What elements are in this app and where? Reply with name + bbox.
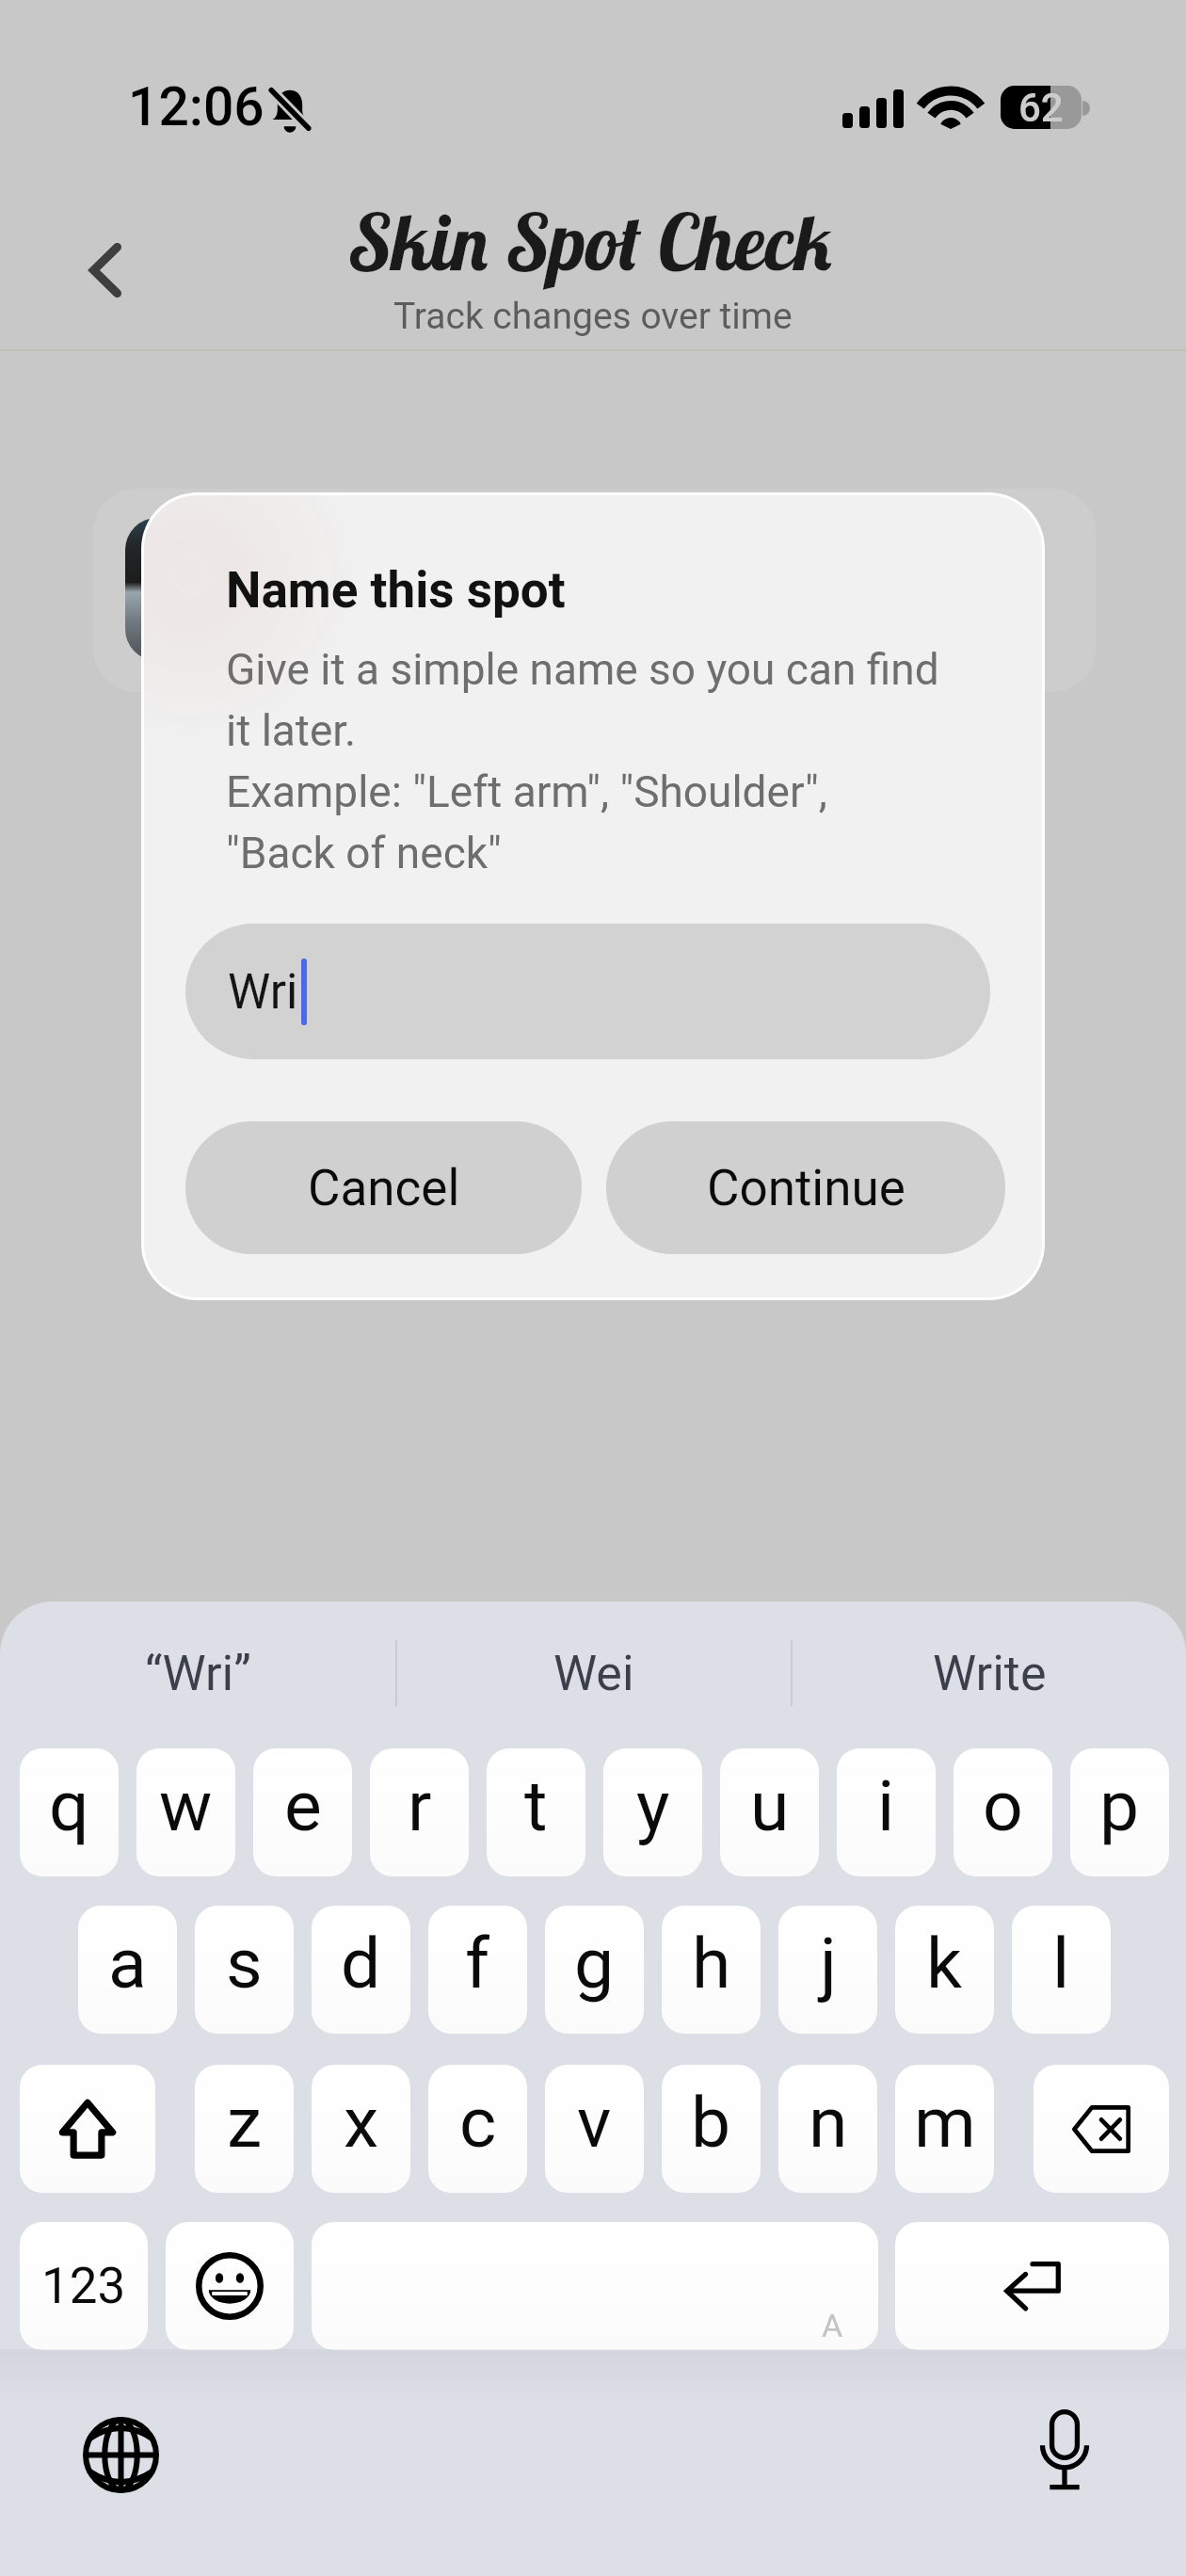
button[interactable]: Cancel (185, 1121, 582, 1254)
button[interactable]: Wei (397, 1626, 791, 1720)
button[interactable]: Wri (185, 924, 990, 1059)
staticText: Cancel (308, 1159, 460, 1217)
staticText: c (459, 2081, 497, 2164)
button[interactable]: x (312, 2065, 410, 2193)
staticText: t (524, 1764, 548, 1847)
staticText: b (691, 2081, 731, 2164)
button[interactable]: y (603, 1748, 702, 1876)
button[interactable]: Shift (20, 2065, 155, 2193)
button[interactable]: o (954, 1748, 1052, 1876)
button[interactable]: i (837, 1748, 936, 1876)
button[interactable]: w (136, 1748, 235, 1876)
button[interactable]: b (662, 2065, 761, 2193)
button[interactable]: u (720, 1748, 819, 1876)
staticText: s (226, 1922, 263, 2004)
staticText: n (809, 2081, 848, 2164)
button[interactable]: Change keyboard language (69, 2403, 172, 2506)
staticText: q (49, 1764, 89, 1847)
button[interactable]: j (778, 1906, 877, 2034)
staticText: e (284, 1764, 322, 1847)
button[interactable]: a (78, 1906, 177, 2034)
button[interactable]: Emoji (166, 2222, 294, 2350)
staticText: Wri (228, 964, 298, 1021)
staticText: l (1052, 1922, 1070, 2004)
staticText: Track changes over time (393, 295, 793, 338)
button[interactable]: c (428, 2065, 527, 2193)
staticText: v (577, 2081, 612, 2164)
staticText: x (344, 2081, 379, 2164)
button[interactable]: Numbers (20, 2222, 148, 2350)
button[interactable]: q (20, 1748, 119, 1876)
button[interactable]: Space (312, 2222, 878, 2350)
button[interactable]: Back (51, 218, 160, 322)
button[interactable]: z (195, 2065, 294, 2193)
staticText: 123 (41, 2257, 126, 2315)
staticText: 62 (1018, 86, 1064, 128)
staticText: u (750, 1764, 790, 1847)
button[interactable]: Return (895, 2222, 1169, 2350)
button[interactable]: p (1070, 1748, 1169, 1876)
staticText: Wei (553, 1645, 634, 1702)
button[interactable]: t (487, 1748, 585, 1876)
staticText: h (692, 1922, 731, 2004)
button[interactable]: e (253, 1748, 352, 1876)
button[interactable]: r (370, 1748, 469, 1876)
staticText: i (877, 1764, 895, 1847)
button[interactable]: v (545, 2065, 644, 2193)
staticText: d (341, 1922, 381, 2004)
staticText: r (408, 1764, 432, 1847)
staticText: p (1099, 1764, 1140, 1847)
staticText: a (108, 1922, 147, 2004)
staticText: Give it a simple name so you can find it… (226, 644, 1007, 878)
button[interactable] (93, 489, 1096, 692)
staticText: “Wri” (145, 1645, 251, 1702)
button[interactable]: Backspace (1034, 2065, 1169, 2193)
staticText: o (983, 1764, 1023, 1847)
staticText: j (820, 1922, 837, 2004)
staticText: k (926, 1922, 963, 2004)
button[interactable]: h (662, 1906, 761, 2034)
staticText: Write (933, 1645, 1047, 1702)
button[interactable]: “Wri” (0, 1626, 395, 1720)
staticText: g (574, 1922, 615, 2004)
button[interactable]: m (895, 2065, 994, 2193)
button[interactable]: l (1012, 1906, 1111, 2034)
staticText: y (636, 1764, 670, 1847)
staticText: Name this spot (226, 561, 566, 620)
staticText: 12:06 (128, 75, 264, 138)
staticText: z (227, 2081, 263, 2164)
button[interactable]: Continue (606, 1121, 1005, 1254)
button[interactable]: k (895, 1906, 994, 2034)
staticText: A (822, 2307, 843, 2344)
button[interactable]: g (545, 1906, 644, 2034)
staticText: f (465, 1922, 490, 2004)
staticText: Skin Spot Check (350, 193, 836, 290)
staticText: w (159, 1764, 213, 1847)
staticText: m (914, 2081, 976, 2164)
button[interactable]: f (428, 1906, 527, 2034)
button[interactable]: d (312, 1906, 410, 2034)
button[interactable]: s (195, 1906, 294, 2034)
button[interactable]: Write (793, 1626, 1186, 1720)
button[interactable]: n (778, 2065, 877, 2193)
staticText: Continue (707, 1159, 906, 1217)
button[interactable]: Dictation (1013, 2398, 1116, 2502)
